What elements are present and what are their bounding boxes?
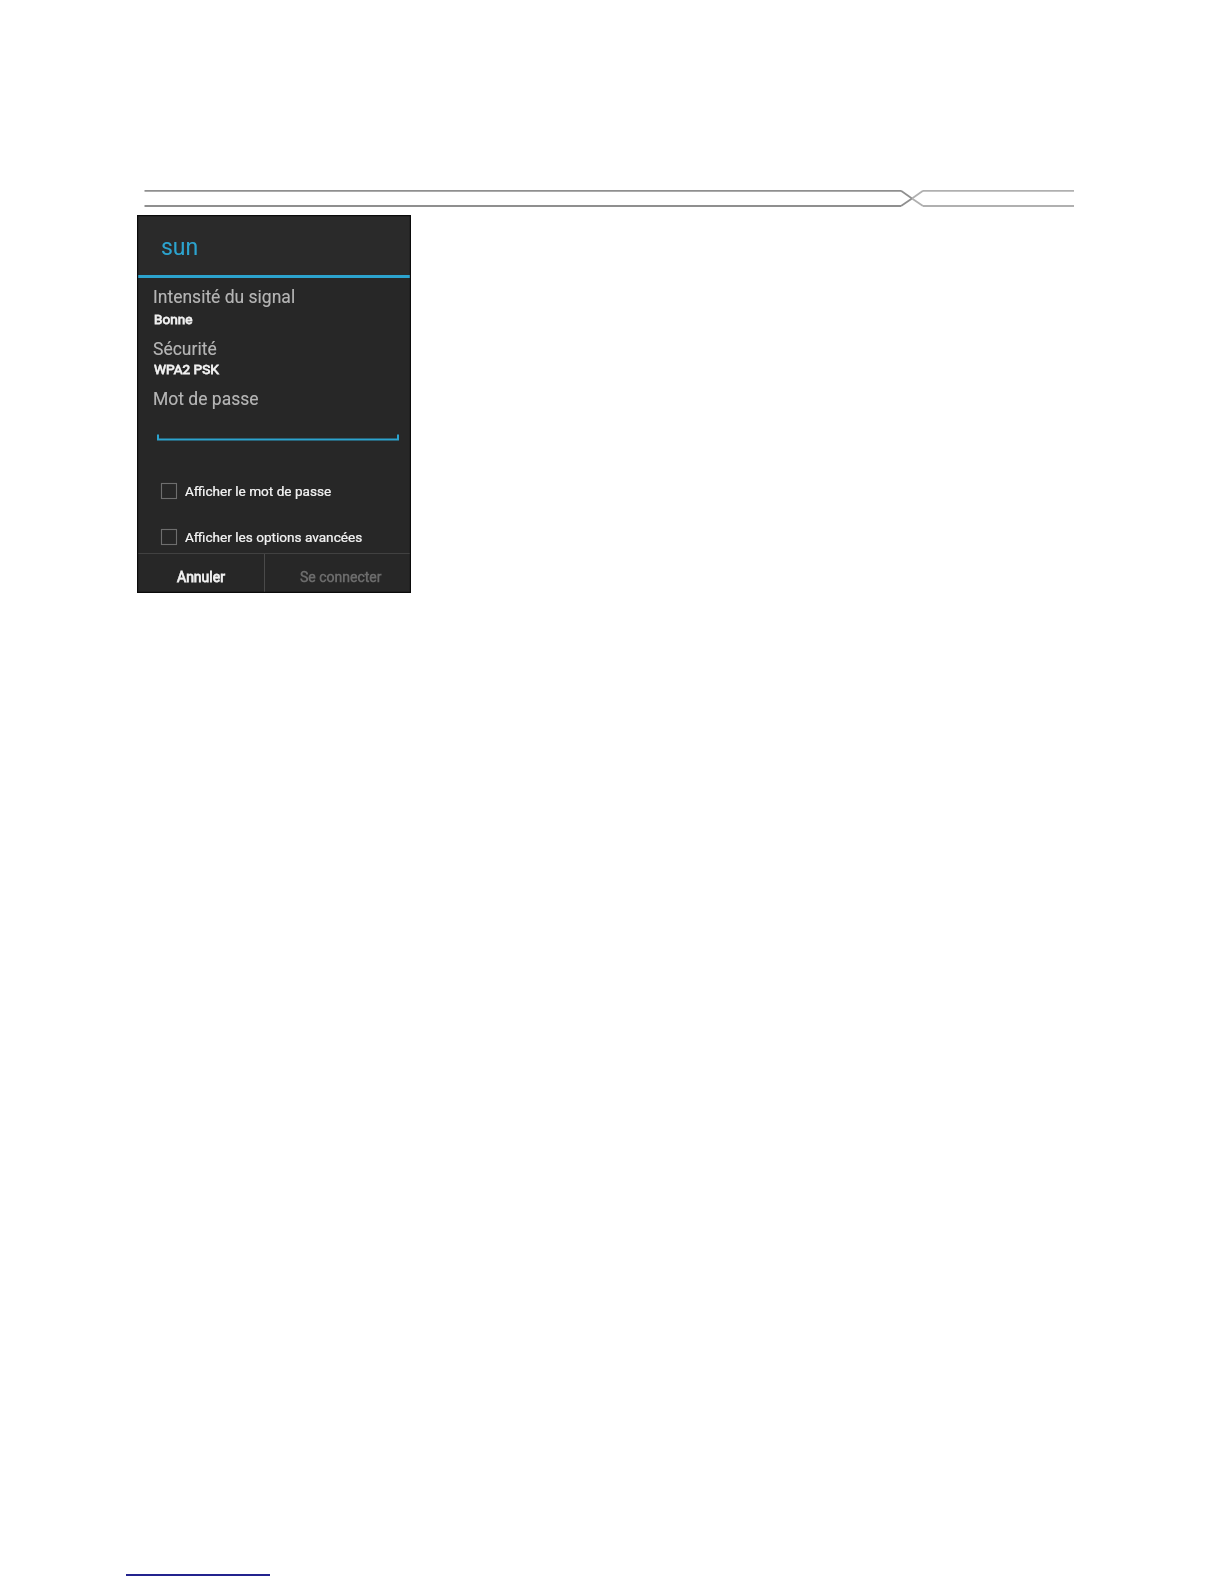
button[interactable]: Afficher le mot de passe [137,475,411,507]
staticText: Annuler [177,569,225,585]
button[interactable]: sun [137,215,411,275]
staticText: sun [161,234,199,261]
staticText: Afficher les options avancées [185,529,363,545]
staticText: Sécurité [153,339,217,360]
staticText: Bonne [154,311,193,327]
staticText: WPA2 PSK [154,361,219,377]
button[interactable]: Champ mot de passe [157,405,399,441]
button[interactable]: Afficher les options avancées [137,521,411,553]
staticText: Afficher le mot de passe [185,483,332,499]
staticText: Se connecter [300,569,382,585]
staticText: Mot de passe [153,389,259,410]
button[interactable]: Se connecter [265,554,411,593]
button[interactable]: Annuler [137,554,264,593]
staticText: Intensité du signal [153,287,296,308]
